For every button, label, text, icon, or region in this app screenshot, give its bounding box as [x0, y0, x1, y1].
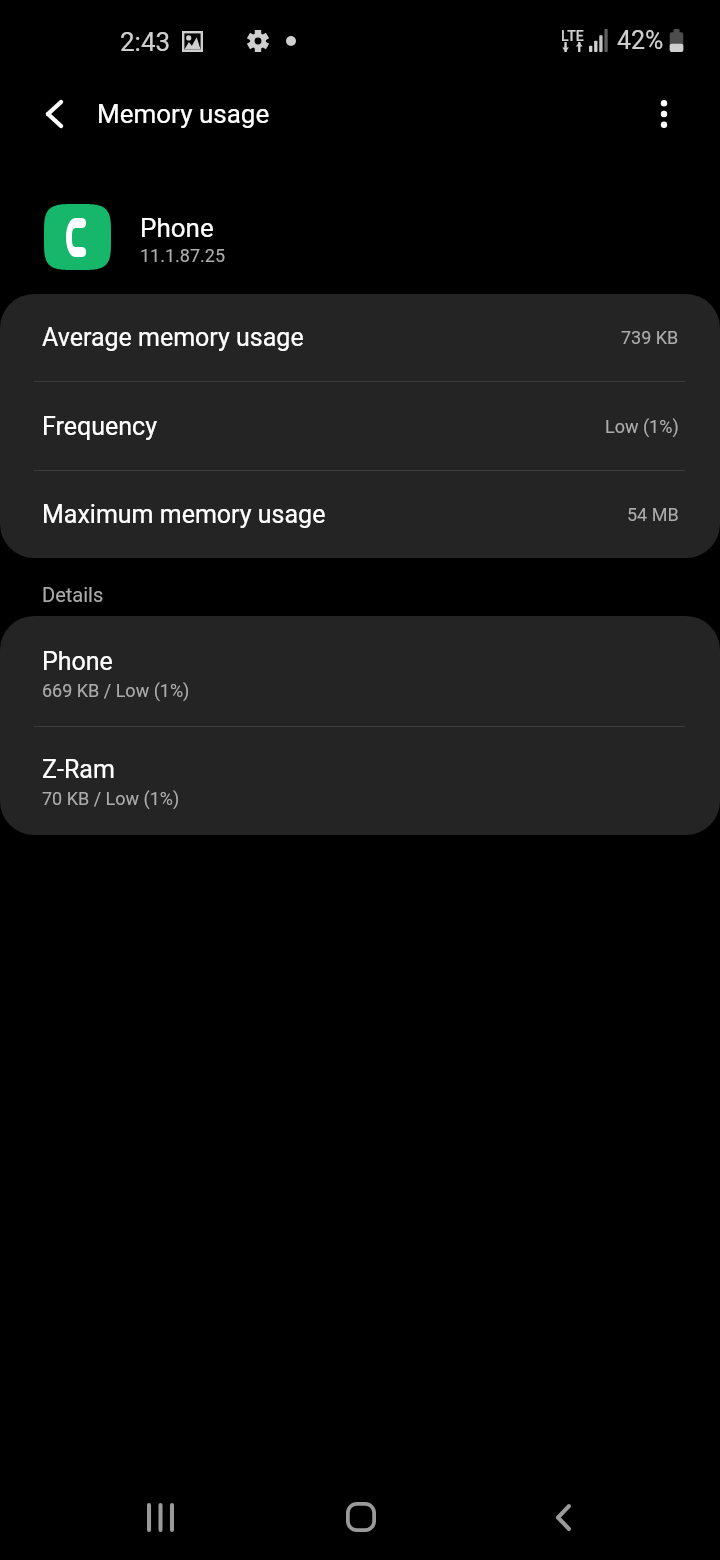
staticText: Maximum memory usage — [42, 500, 326, 529]
staticText: Phone — [140, 213, 214, 243]
button[interactable]: Home — [321, 1487, 401, 1547]
staticText: LTE — [561, 28, 584, 44]
button[interactable]: Phone 11.1.87.25 — [0, 186, 720, 288]
button[interactable]: Average memory usage — [0, 294, 720, 381]
staticText: 11.1.87.25 — [140, 245, 226, 266]
staticText: 54 MB — [627, 504, 679, 525]
staticText: 42% — [617, 26, 664, 55]
button[interactable]: Z-Ram — [0, 727, 720, 835]
staticText: Average memory usage — [42, 323, 304, 352]
staticText: Memory usage — [97, 99, 270, 129]
staticText: Frequency — [42, 412, 157, 441]
button[interactable]: Phone — [0, 616, 720, 726]
button[interactable]: Maximum memory usage — [0, 471, 720, 558]
staticText: Low (1%) — [605, 416, 679, 437]
button[interactable]: Back — [523, 1487, 603, 1547]
staticText: Z-Ram — [42, 755, 115, 784]
staticText: Details — [42, 583, 104, 606]
button[interactable]: Recent apps — [120, 1487, 200, 1547]
staticText: 739 KB — [621, 327, 679, 348]
button[interactable]: Frequency — [0, 382, 720, 470]
button[interactable]: More options — [635, 85, 693, 143]
staticText: 2:43 — [120, 27, 171, 57]
staticText: 669 KB / Low (1%) — [42, 680, 190, 701]
staticText: 70 KB / Low (1%) — [42, 788, 180, 809]
staticText: Phone — [42, 647, 113, 676]
button[interactable]: Navigate up — [25, 85, 83, 143]
